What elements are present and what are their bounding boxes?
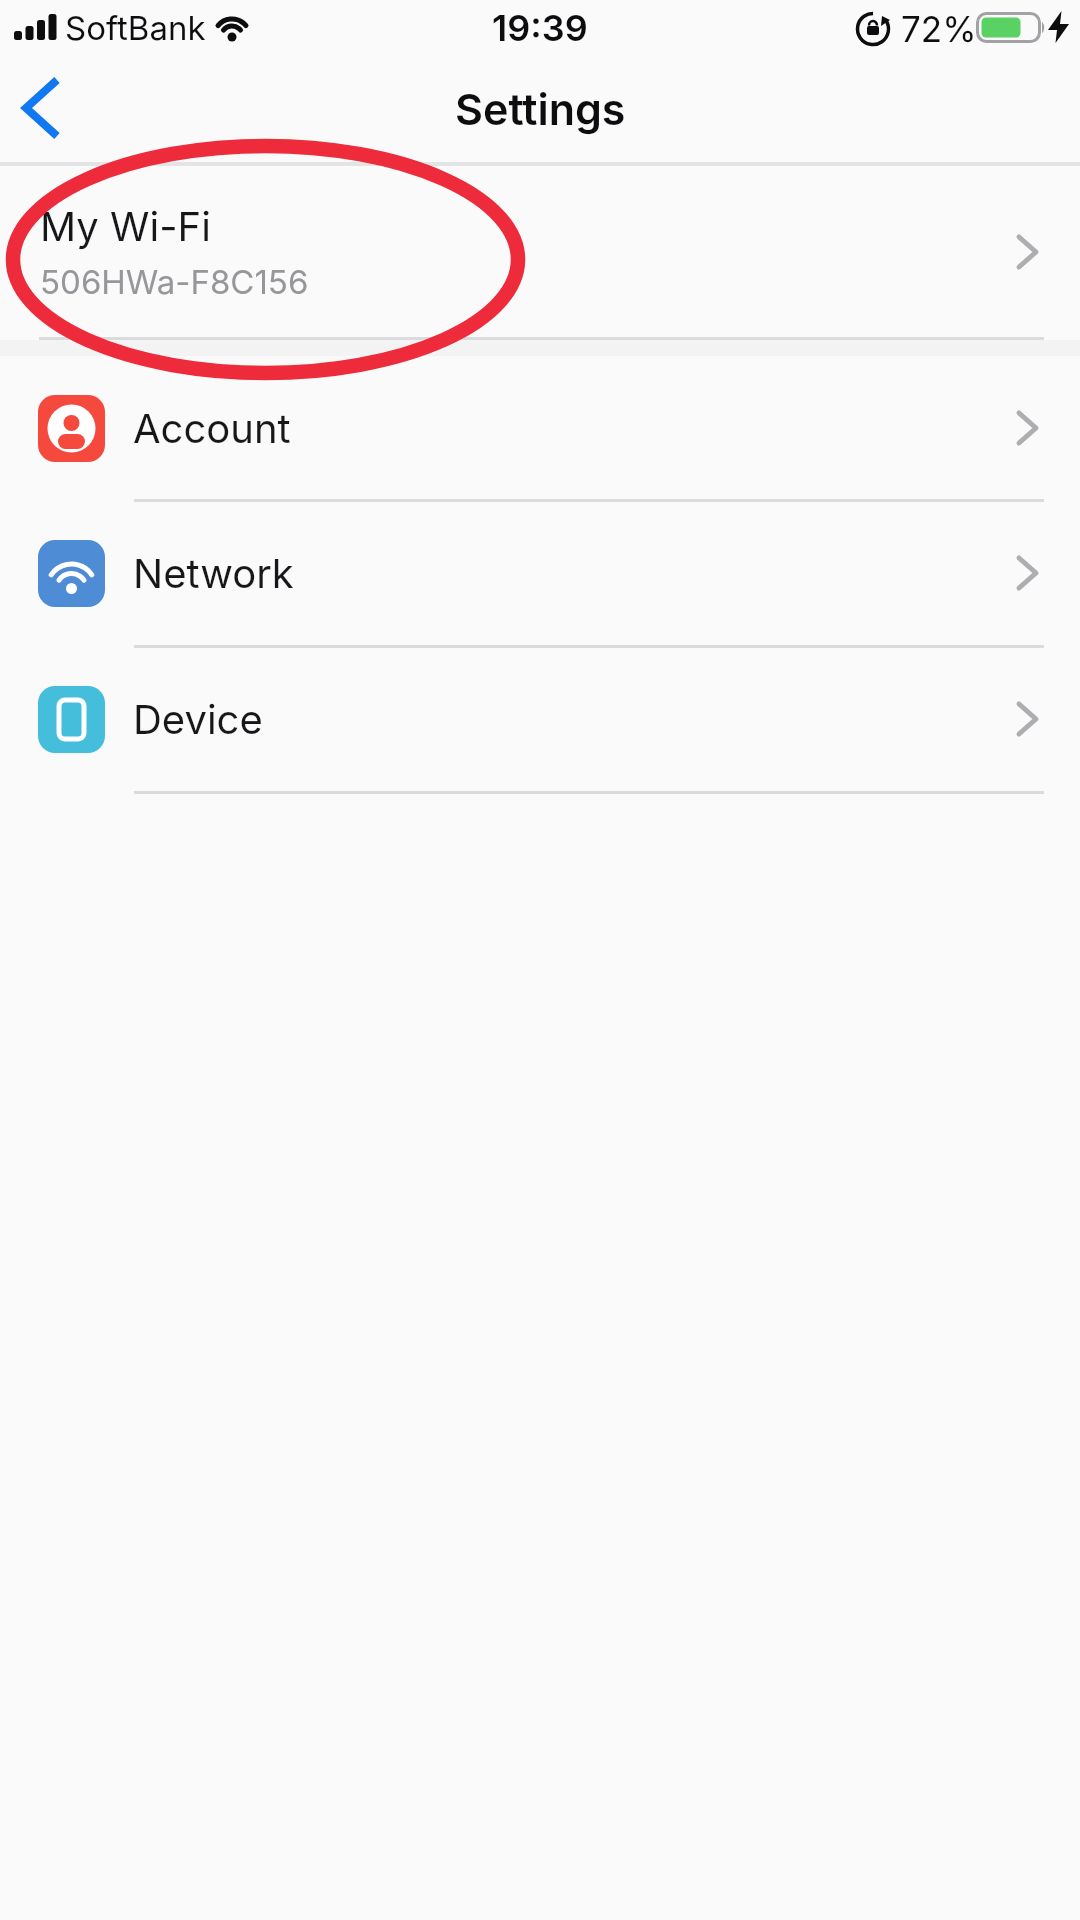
staticText: Network xyxy=(133,549,294,597)
button[interactable] xyxy=(0,647,1080,791)
button[interactable] xyxy=(0,356,1080,500)
button[interactable] xyxy=(20,76,62,140)
staticText: Device xyxy=(133,695,263,743)
staticText: Account xyxy=(133,404,291,452)
button[interactable]: My Wi-Fi xyxy=(0,166,1080,337)
staticText: My Wi-Fi xyxy=(40,202,211,250)
staticText: 19:39 xyxy=(492,6,588,50)
staticText: Settings xyxy=(455,83,626,135)
button[interactable] xyxy=(0,501,1080,645)
staticText: SoftBank xyxy=(65,8,206,48)
staticText: 72% xyxy=(901,8,977,50)
staticText: 506HWa-F8C156 xyxy=(40,262,309,302)
